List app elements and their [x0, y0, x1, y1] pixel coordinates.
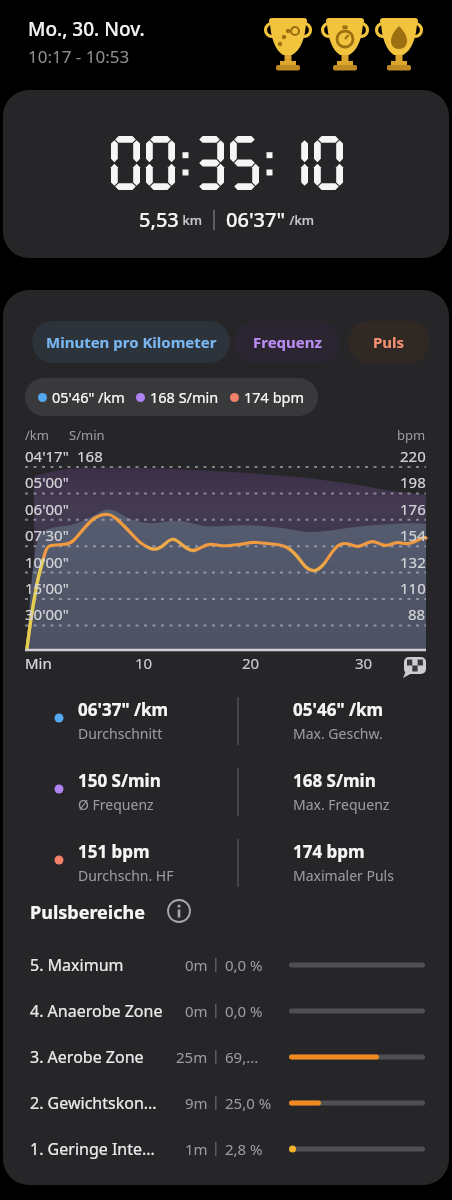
staticText: 10'00"	[25, 552, 69, 572]
button[interactable]: 168 S/min	[293, 769, 390, 814]
staticText: 0,0 %	[225, 955, 263, 975]
button[interactable]: Frequenz	[234, 321, 340, 363]
staticText: 174 bpm	[293, 840, 365, 863]
staticText: 154	[400, 525, 426, 545]
staticText: 150 S/min	[78, 769, 161, 792]
button[interactable]	[322, 16, 368, 76]
staticText: 04'17"	[25, 446, 69, 466]
staticText: 168 S/min	[150, 387, 219, 407]
staticText: 2. Gewichtskon...	[30, 1092, 157, 1114]
staticText: 174 bpm	[244, 387, 305, 407]
staticText: Max. Frequenz	[293, 795, 390, 814]
staticText: 30'00"	[25, 604, 69, 624]
staticText: Max. Geschw.	[293, 724, 383, 743]
button[interactable]	[376, 16, 422, 76]
staticText: 1. Geringe Inte...	[30, 1138, 155, 1160]
staticText: bpm	[397, 426, 426, 444]
button[interactable]: 5. Maximum	[3, 953, 449, 977]
staticText: 168 S/min	[293, 769, 376, 792]
staticText: 3. Aerobe Zone	[30, 1046, 144, 1068]
staticText: 0m	[185, 955, 208, 975]
staticText: 220	[400, 446, 426, 466]
staticText: 0m	[185, 1001, 208, 1021]
staticText: 151 bpm	[78, 840, 150, 863]
staticText: 05'46" /km	[293, 698, 384, 721]
staticText: 110	[400, 578, 426, 598]
staticText: 05'00"	[25, 472, 69, 492]
staticText: Frequenz	[253, 332, 322, 352]
staticText: 05'46" /km	[52, 387, 125, 407]
button[interactable]: Puls	[348, 321, 430, 363]
staticText: Min	[25, 653, 52, 673]
button[interactable]: 06'37" /km	[78, 698, 169, 743]
button[interactable]: 5,53	[3, 90, 449, 258]
staticText: 20	[242, 653, 260, 673]
button[interactable]: Minuten pro Kilometer	[32, 321, 230, 363]
staticText: 10:17 - 10:53	[28, 45, 130, 68]
button[interactable]: 174 bpm	[293, 840, 394, 885]
staticText: S/min	[69, 426, 105, 444]
staticText: Durchschnitt	[78, 724, 163, 743]
staticText: Pulsbereiche	[30, 900, 145, 925]
staticText: 15'00"	[25, 578, 69, 598]
staticText: 198	[400, 472, 426, 492]
button[interactable]: 1. Geringe Inte...	[3, 1137, 449, 1161]
staticText: Mo., 30. Nov.	[28, 16, 145, 42]
staticText: 25,0 %	[225, 1093, 272, 1113]
staticText: Ø Frequenz	[78, 795, 154, 814]
staticText: 06'37" /km	[78, 698, 169, 721]
staticText: 176	[400, 499, 426, 519]
button[interactable]: 05'46" /km	[293, 698, 384, 743]
staticText: 9m	[185, 1093, 208, 1113]
button[interactable]: 3. Aerobe Zone	[3, 1045, 449, 1069]
staticText: 25m	[176, 1047, 208, 1067]
button[interactable]: 150 S/min	[78, 769, 161, 814]
button[interactable]: 4. Anaerobe Zone	[3, 999, 449, 1023]
staticText: Maximaler Puls	[293, 866, 394, 885]
staticText: 132	[400, 552, 426, 572]
staticText: 168	[77, 446, 103, 466]
staticText: 06'00"	[25, 499, 69, 519]
staticText: 30	[355, 653, 373, 673]
staticText: 07'30"	[25, 525, 69, 545]
staticText: 5,53	[139, 206, 179, 233]
button[interactable]: 2. Gewichtskon...	[3, 1091, 449, 1115]
staticText: Minuten pro Kilometer	[46, 332, 217, 352]
staticText: km	[179, 211, 202, 229]
staticText: Durchschn. HF	[78, 866, 174, 885]
staticText: 2,8 %	[225, 1139, 263, 1159]
staticText: 06'37"	[226, 206, 286, 233]
staticText: Puls	[373, 332, 405, 352]
staticText: /km	[286, 211, 314, 229]
staticText: 4. Anaerobe Zone	[30, 1000, 163, 1022]
staticText: 1m	[185, 1139, 208, 1159]
staticText: 5. Maximum	[30, 954, 124, 976]
staticText: 10	[135, 653, 153, 673]
staticText: 69,...	[225, 1047, 259, 1067]
staticText: /km	[25, 426, 49, 444]
staticText: 88	[408, 604, 426, 624]
button[interactable]	[265, 16, 311, 76]
staticText: 0,0 %	[225, 1001, 263, 1021]
button[interactable]: 151 bpm	[78, 840, 174, 885]
